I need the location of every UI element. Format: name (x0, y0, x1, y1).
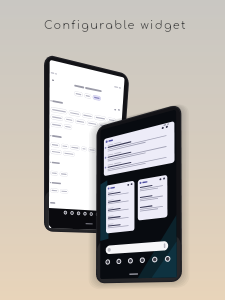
button[interactable]: Configurable widget (44, 19, 187, 31)
